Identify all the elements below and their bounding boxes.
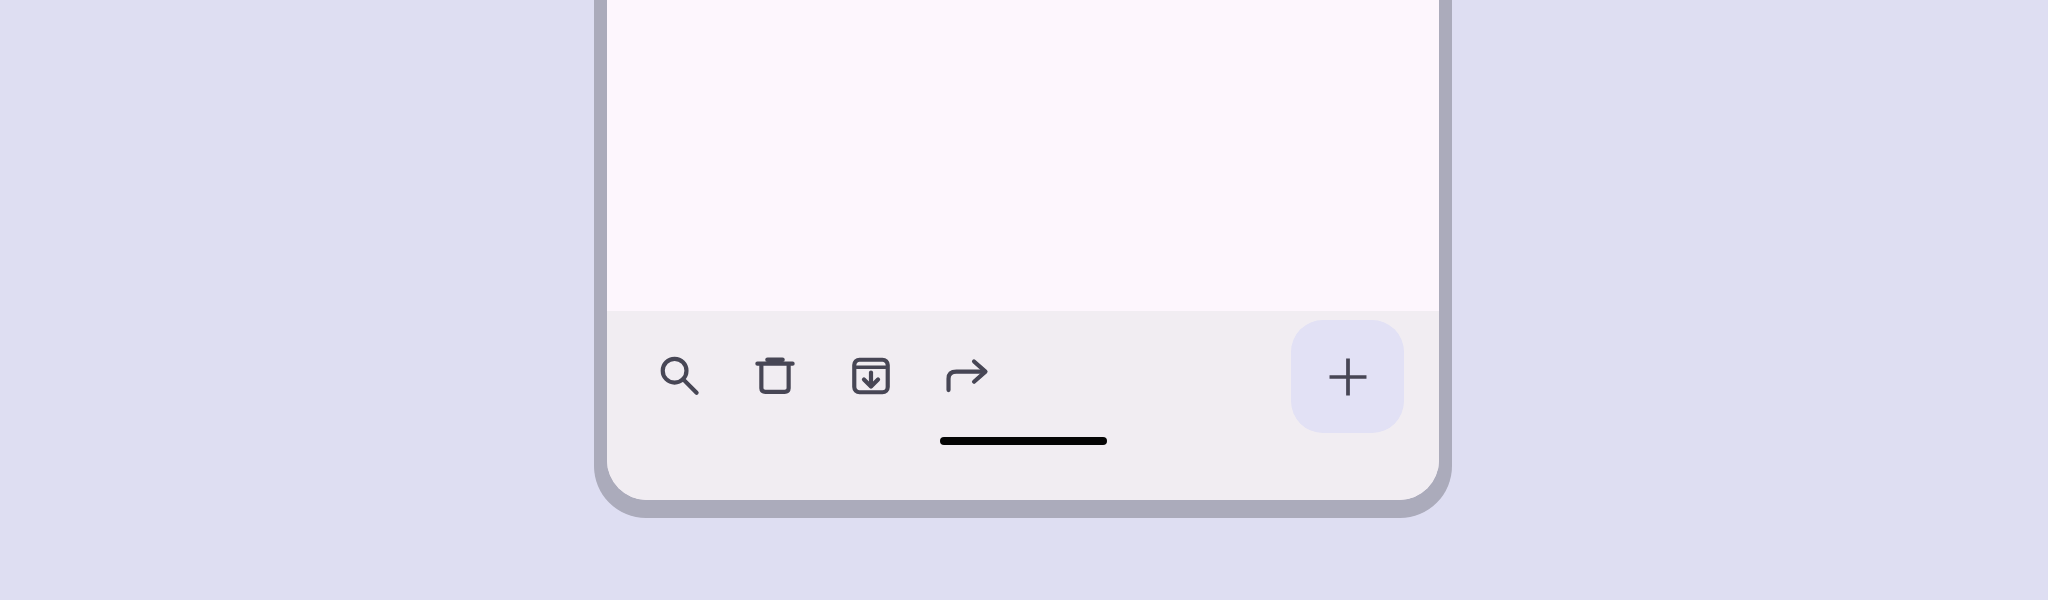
- button[interactable]: Archive: [835, 340, 907, 412]
- button[interactable]: Forward: [931, 340, 1003, 412]
- button[interactable]: Search: [643, 340, 715, 412]
- button[interactable]: Add: [1291, 320, 1404, 433]
- button[interactable]: Delete: [739, 340, 811, 412]
